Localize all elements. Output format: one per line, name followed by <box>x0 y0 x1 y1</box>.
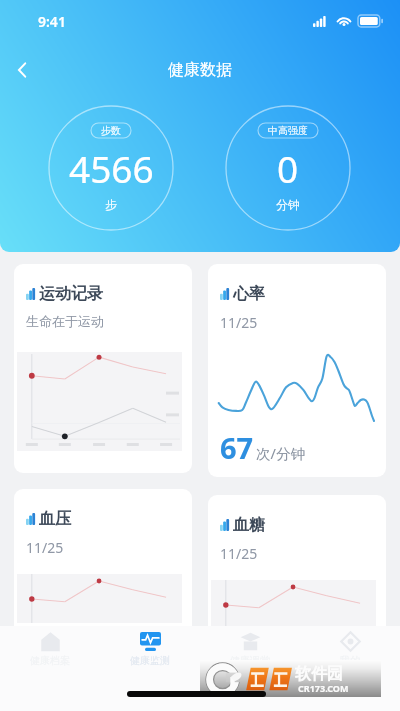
staticText: 9:41 <box>38 12 66 31</box>
staticText: 心率 <box>233 284 265 304</box>
staticText: 健康课堂 <box>230 654 270 667</box>
staticText: 我的 <box>340 654 360 667</box>
staticText: 4566 <box>69 143 154 193</box>
staticText: 67 <box>220 428 254 467</box>
staticText: 软件园 <box>295 664 343 684</box>
button[interactable]: 血压 <box>14 489 192 649</box>
staticText: 11/25 <box>220 313 258 332</box>
staticText: 健康数据 <box>168 60 232 80</box>
staticText: 11/25 <box>26 538 64 557</box>
staticText: 步 <box>105 197 117 212</box>
staticText: 健康档案 <box>30 654 70 667</box>
staticText: 健康监测 <box>130 654 170 667</box>
staticText: 血压 <box>39 509 71 529</box>
button[interactable]: 运动记录 <box>14 264 192 473</box>
staticText: 生命在于运动 <box>26 313 104 329</box>
staticText: 0 <box>277 143 299 193</box>
button[interactable]: 心率 <box>208 264 386 477</box>
staticText: 次/分钟 <box>256 443 305 463</box>
button[interactable]: 血糖 <box>208 495 386 655</box>
staticText: CR173.COM <box>298 682 349 694</box>
staticText: 11/25 <box>220 544 258 563</box>
button[interactable]: 健康课堂 <box>200 626 300 667</box>
button[interactable]: Back <box>4 52 40 88</box>
staticText: 血糖 <box>233 515 265 535</box>
button[interactable]: 健康档案 <box>0 626 100 667</box>
staticText: 步数 <box>101 124 121 137</box>
button[interactable]: 我的 <box>300 626 400 667</box>
staticText: 中高强度 <box>268 124 308 137</box>
staticText: 分钟 <box>276 197 300 212</box>
button[interactable]: 健康监测 <box>100 626 200 667</box>
staticText: 运动记录 <box>39 284 103 304</box>
